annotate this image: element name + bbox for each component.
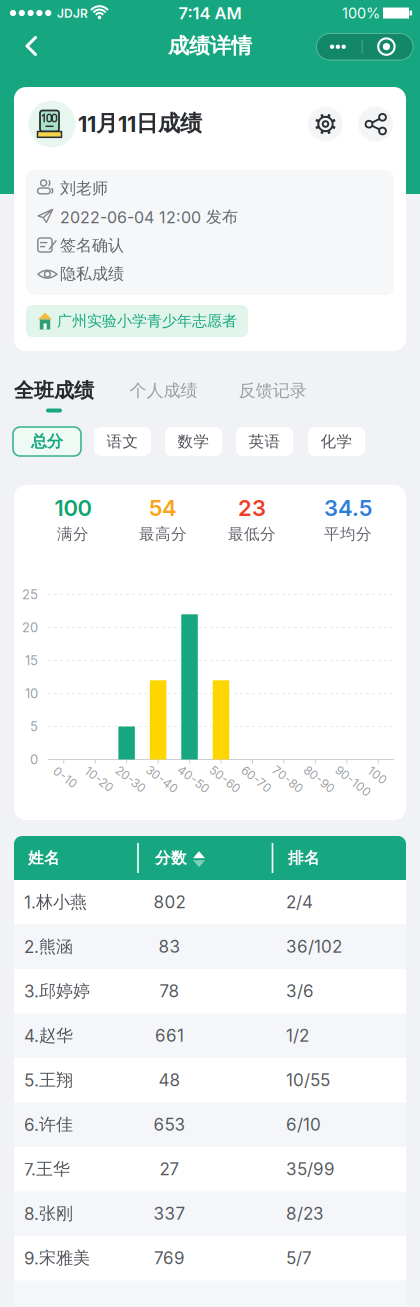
- staticText: 7.王华: [24, 1158, 70, 1180]
- staticText: 30-40: [144, 772, 181, 787]
- staticText: 隐私成绩: [60, 264, 124, 284]
- staticText: 签名确认: [60, 235, 124, 256]
- staticText: 100: [367, 768, 388, 783]
- staticText: 23: [238, 495, 266, 521]
- staticText: 25: [22, 587, 38, 602]
- staticText: 83: [158, 936, 180, 957]
- staticText: 3.邱婷婷: [24, 980, 90, 1002]
- staticText: 反馈记录: [239, 380, 307, 401]
- staticText: 661: [155, 1025, 184, 1046]
- staticText: 100: [54, 495, 91, 521]
- staticText: 80-90: [301, 772, 337, 787]
- staticText: 40-50: [175, 772, 212, 787]
- staticText: 8/23: [286, 1203, 324, 1224]
- staticText: 11月11日成绩: [78, 110, 202, 137]
- staticText: 2022-06-04 12:00 发布: [60, 207, 238, 227]
- staticText: 1.林小燕: [24, 891, 87, 913]
- staticText: 数学: [177, 432, 209, 451]
- staticText: 769: [154, 1248, 185, 1268]
- staticText: 6/10: [286, 1114, 321, 1135]
- staticText: 100%: [342, 4, 380, 22]
- staticText: 27: [159, 1159, 179, 1179]
- staticText: 54: [149, 495, 177, 521]
- staticText: 34.5: [324, 495, 372, 521]
- staticText: 全班成绩: [14, 378, 94, 403]
- staticText: 平均分: [324, 524, 372, 544]
- staticText: 5/7: [286, 1248, 312, 1268]
- staticText: 5.王翔: [24, 1069, 73, 1091]
- staticText: 90-100: [332, 774, 374, 788]
- staticText: 4.赵华: [24, 1025, 73, 1046]
- staticText: 刘老师: [60, 178, 108, 199]
- staticText: 35/99: [286, 1159, 335, 1179]
- staticText: 48: [158, 1070, 180, 1090]
- staticText: 语文: [106, 432, 138, 451]
- staticText: 15: [25, 653, 38, 668]
- staticText: 10/55: [286, 1070, 330, 1090]
- staticText: 分数: [155, 848, 187, 868]
- staticText: 2.熊涵: [24, 936, 73, 957]
- staticText: 化学: [320, 432, 352, 451]
- staticText: 最低分: [228, 524, 276, 544]
- staticText: 3/6: [286, 981, 314, 1001]
- staticText: 姓名: [28, 848, 60, 868]
- staticText: 60-70: [239, 772, 274, 787]
- staticText: 5: [30, 719, 38, 734]
- staticText: 78: [159, 981, 179, 1001]
- staticText: 20-30: [113, 772, 148, 787]
- staticText: 个人成绩: [129, 380, 197, 401]
- staticText: 6.许佳: [24, 1114, 73, 1135]
- staticText: 36/102: [286, 936, 342, 957]
- staticText: 0-10: [52, 770, 79, 785]
- staticText: 广州实验小学青少年志愿者: [57, 312, 237, 330]
- staticText: 20: [22, 620, 38, 635]
- staticText: 50-60: [207, 772, 243, 787]
- staticText: 总分: [31, 431, 63, 452]
- staticText: 10: [25, 686, 38, 701]
- staticText: 满分: [57, 524, 89, 544]
- staticText: 最高分: [139, 524, 187, 544]
- staticText: 653: [153, 1114, 185, 1135]
- staticText: 排名: [288, 848, 320, 868]
- staticText: 英语: [248, 432, 280, 451]
- staticText: 337: [153, 1203, 185, 1224]
- staticText: 0: [30, 752, 38, 767]
- staticText: 成绩详情: [168, 33, 252, 59]
- staticText: 10-20: [83, 772, 116, 787]
- staticText: 9.宋雅美: [24, 1247, 90, 1269]
- staticText: 7:14 AM: [178, 3, 241, 23]
- staticText: 70-80: [270, 772, 306, 787]
- staticText: 8.张刚: [24, 1203, 73, 1224]
- staticText: 2/4: [286, 892, 313, 912]
- staticText: 1/2: [286, 1025, 309, 1046]
- staticText: JDJR: [57, 6, 88, 20]
- staticText: 802: [153, 892, 185, 912]
